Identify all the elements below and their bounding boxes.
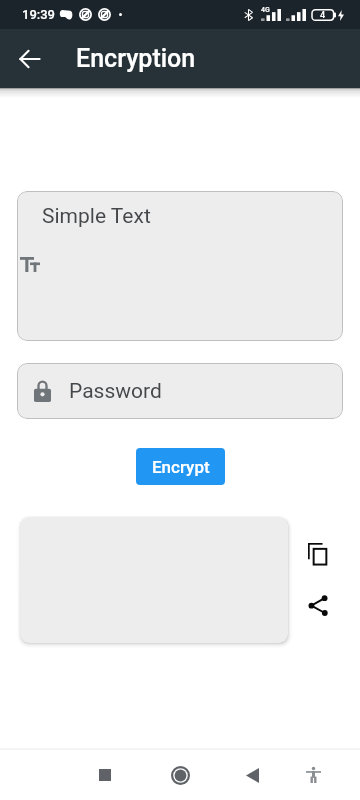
button[interactable]: Share [298,585,338,625]
button[interactable]: Back [8,37,52,81]
button[interactable]: Simple Text [17,191,343,341]
staticText: 4 [320,10,326,21]
staticText: 4G [261,6,270,14]
staticText: Simple Text [42,204,151,229]
button[interactable]: Encrypt [136,448,225,485]
staticText: Encrypt [152,457,210,477]
button[interactable]: Home [160,755,200,795]
button[interactable]: Password [17,363,343,419]
button[interactable]: Accessibility [293,755,333,795]
staticText: 19:39 [22,7,56,22]
staticText: Encryption [76,44,196,73]
button[interactable]: Back [232,755,272,795]
staticText: Password [69,379,162,404]
button[interactable]: Copy [298,534,338,574]
button[interactable]: Recent apps [85,755,125,795]
